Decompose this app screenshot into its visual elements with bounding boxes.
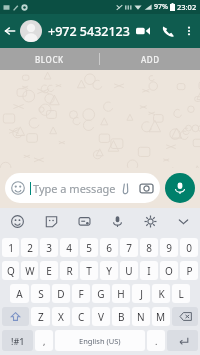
staticText: I <box>147 264 151 278</box>
staticText: 97% <box>154 2 168 12</box>
button[interactable]: +972 5432123 <box>48 14 130 48</box>
button[interactable]: Z <box>31 307 50 326</box>
button[interactable]: 8 <box>140 238 158 257</box>
button[interactable]: 7 <box>120 238 138 257</box>
button[interactable]: M <box>152 307 170 326</box>
staticText: Y <box>106 264 112 278</box>
staticText: 9 <box>166 241 172 255</box>
button[interactable]: 3 <box>40 238 58 257</box>
button[interactable]: P <box>180 261 198 280</box>
button[interactable]: 5 <box>80 238 98 257</box>
staticText: A <box>16 287 23 301</box>
button[interactable]: GIF <box>68 208 101 234</box>
staticText: English (US) <box>79 336 121 346</box>
staticText: 5 <box>86 241 92 255</box>
staticText: 23:02 <box>177 2 197 12</box>
button[interactable]: D <box>52 284 70 303</box>
staticText: E <box>46 264 52 278</box>
staticText: D <box>57 287 65 301</box>
staticText: U <box>125 264 133 278</box>
button[interactable]: H <box>112 284 130 303</box>
button[interactable]: 4 <box>60 238 78 257</box>
staticText: N <box>137 310 145 324</box>
button[interactable]: R <box>60 261 78 280</box>
button[interactable]: N <box>132 307 150 326</box>
staticText: 6 <box>106 241 112 255</box>
button[interactable]: E <box>40 261 58 280</box>
button[interactable]: ADD <box>100 48 200 70</box>
button[interactable]: Video call <box>130 14 156 48</box>
staticText: +972 5432123 <box>48 23 130 40</box>
button[interactable]: BLOCK <box>0 48 99 70</box>
button[interactable]: T <box>80 261 98 280</box>
staticText: O <box>165 264 173 278</box>
staticText: 3 <box>46 241 52 255</box>
button[interactable]: Back <box>0 14 20 48</box>
button[interactable]: Y <box>100 261 118 280</box>
button[interactable]: Enter <box>167 330 198 351</box>
button[interactable]: Voice message <box>165 173 195 203</box>
button[interactable]: 9 <box>160 238 178 257</box>
staticText: F <box>78 287 84 301</box>
staticText: R <box>66 264 73 278</box>
button[interactable]: O <box>160 261 178 280</box>
button[interactable]: G <box>92 284 110 303</box>
button[interactable]: Type a message <box>5 173 160 203</box>
button[interactable]: Camera <box>138 180 154 196</box>
button[interactable]: Voice input <box>101 208 134 234</box>
button[interactable]: 6 <box>100 238 118 257</box>
staticText: 2 <box>27 241 33 255</box>
button[interactable]: X <box>52 307 70 326</box>
button[interactable]: W <box>21 261 38 280</box>
button[interactable]: 1 <box>2 238 19 257</box>
button[interactable]: Stickers <box>34 208 68 234</box>
button[interactable]: 2 <box>21 238 38 257</box>
button[interactable]: Settings <box>134 208 167 234</box>
button[interactable]: V <box>92 307 110 326</box>
staticText: ADD <box>141 54 160 65</box>
button[interactable]: !#1 <box>2 330 33 351</box>
staticText: T <box>86 264 92 278</box>
button[interactable]: Attach <box>116 180 132 196</box>
button[interactable]: Backspace <box>172 307 198 326</box>
button[interactable]: U <box>120 261 138 280</box>
button[interactable]: J <box>132 284 150 303</box>
staticText: !#1 <box>11 335 25 347</box>
staticText: P <box>186 264 193 278</box>
button[interactable]: F <box>72 284 90 303</box>
staticText: S <box>38 287 44 301</box>
staticText: H <box>117 287 125 301</box>
button[interactable]: Contact photo <box>20 20 42 42</box>
button[interactable]: Q <box>2 261 19 280</box>
button[interactable]: I <box>140 261 158 280</box>
button[interactable]: Call <box>156 14 180 48</box>
staticText: G <box>97 287 105 301</box>
button[interactable]: Shift <box>2 307 29 326</box>
staticText: 4 <box>66 241 72 255</box>
staticText: K <box>158 287 165 301</box>
button[interactable]: S <box>31 284 50 303</box>
button[interactable]: L <box>172 284 190 303</box>
button[interactable]: A <box>10 284 29 303</box>
staticText: . <box>155 335 158 347</box>
button[interactable]: , <box>35 330 53 351</box>
staticText: J <box>140 287 143 301</box>
button[interactable]: More options <box>180 14 198 48</box>
button[interactable]: K <box>152 284 170 303</box>
staticText: C <box>78 310 85 324</box>
button[interactable]: Collapse <box>167 208 200 234</box>
button[interactable]: . <box>147 330 165 351</box>
staticText: L <box>178 287 184 301</box>
staticText: BLOCK <box>35 54 64 65</box>
button[interactable]: English (US) <box>55 330 145 351</box>
staticText: 0 <box>186 241 192 255</box>
button[interactable]: B <box>112 307 130 326</box>
staticText: M <box>156 310 166 324</box>
button[interactable]: C <box>72 307 90 326</box>
staticText: W <box>25 264 35 278</box>
staticText: Q <box>7 264 15 278</box>
staticText: 8 <box>146 241 152 255</box>
button[interactable]: Emoji <box>0 208 34 234</box>
staticText: B <box>118 310 125 324</box>
button[interactable]: 0 <box>180 238 198 257</box>
